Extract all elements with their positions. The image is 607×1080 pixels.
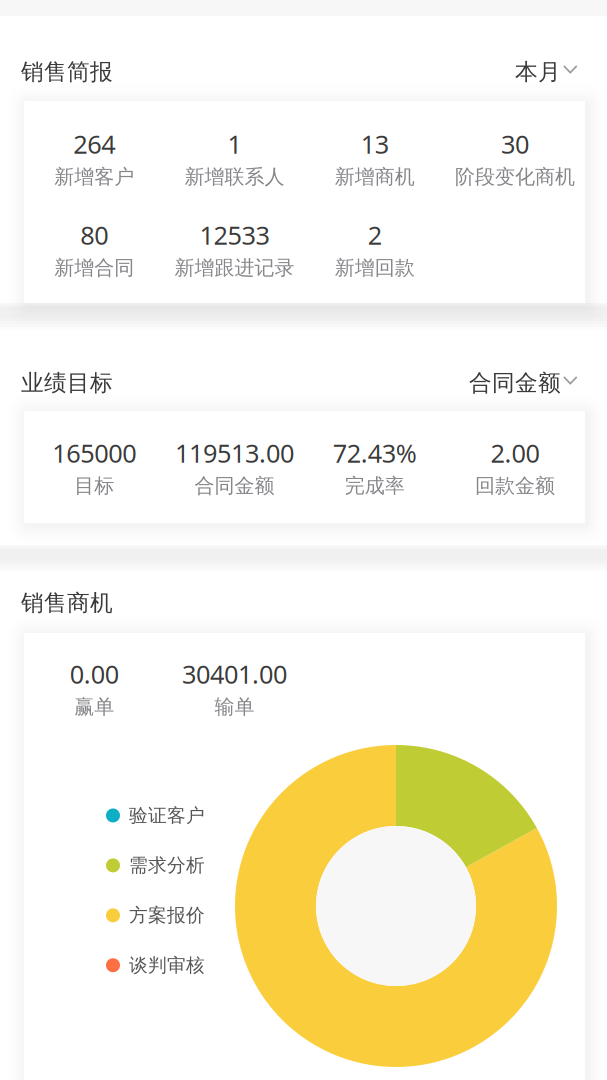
staticText: 119513.00 — [175, 436, 294, 470]
staticText: 新增联系人 — [184, 165, 284, 189]
staticText: 完成率 — [345, 474, 405, 498]
staticText: 输单 — [214, 695, 254, 719]
staticText: 回款金额 — [475, 474, 555, 498]
staticText: 验证客户 — [129, 804, 205, 827]
staticText: 2.00 — [490, 436, 539, 470]
staticText: 业绩目标 — [21, 369, 113, 397]
button[interactable]: 合同金额 — [469, 369, 578, 397]
staticText: 合同金额 — [194, 474, 274, 498]
staticText: 新增客户 — [54, 165, 134, 189]
button[interactable]: 本月 — [515, 58, 578, 86]
staticText: 谈判审核 — [129, 954, 205, 977]
staticText: 本月 — [515, 58, 561, 86]
staticText: 合同金额 — [469, 369, 561, 397]
staticText: 13 — [361, 127, 389, 161]
staticText: 阶段变化商机 — [455, 165, 575, 189]
staticText: 销售简报 — [21, 58, 113, 86]
staticText: 目标 — [74, 474, 114, 498]
staticText: 0.00 — [70, 657, 119, 691]
staticText: 新增商机 — [335, 165, 415, 189]
staticText: 165000 — [52, 436, 136, 470]
staticText: 销售商机 — [21, 589, 113, 617]
staticText: 80 — [80, 218, 108, 252]
staticText: 1 — [227, 127, 241, 161]
staticText: 72.43% — [333, 436, 417, 470]
staticText: 赢单 — [74, 695, 114, 719]
staticText: 2 — [368, 218, 382, 252]
staticText: 264 — [73, 127, 115, 161]
staticText: 30 — [501, 127, 529, 161]
staticText: 方案报价 — [129, 904, 205, 927]
staticText: 需求分析 — [129, 854, 205, 877]
staticText: 30401.00 — [182, 657, 287, 691]
staticText: 新增回款 — [335, 256, 415, 280]
staticText: 12533 — [199, 218, 269, 252]
staticText: 新增跟进记录 — [174, 256, 294, 280]
staticText: 新增合同 — [54, 256, 134, 280]
